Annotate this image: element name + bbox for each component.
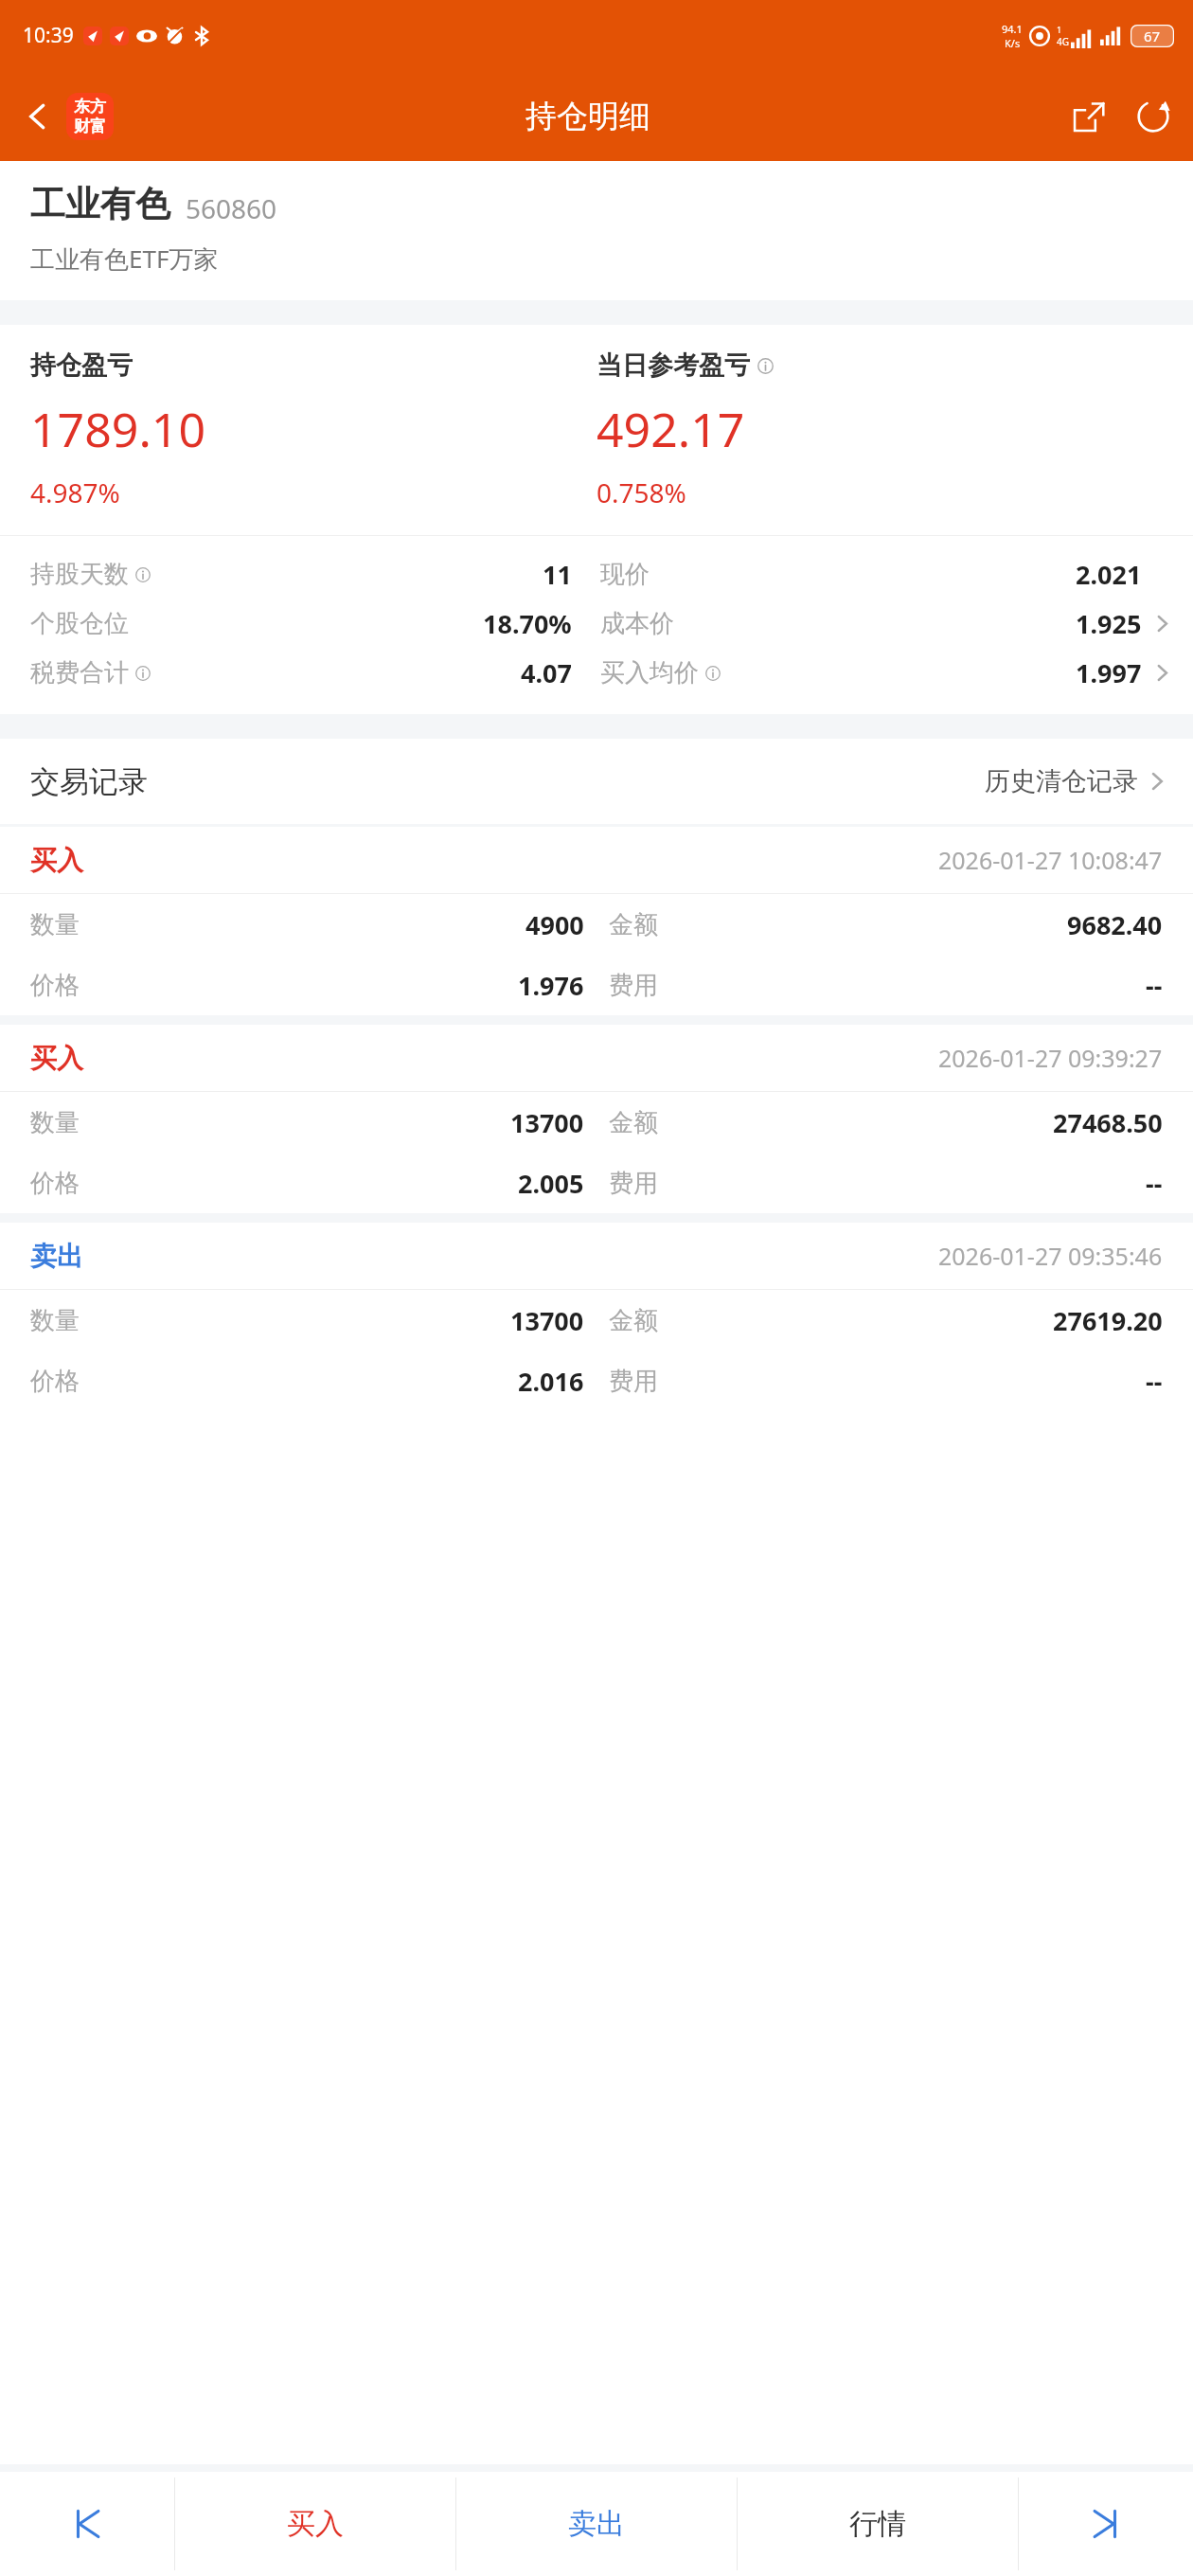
staticText: 费用 [609, 1168, 658, 1199]
staticText: 价格 [30, 1366, 80, 1397]
button[interactable]: 买入 [175, 2472, 455, 2576]
staticText: 历史清仓记录 [985, 765, 1138, 797]
staticText: 工业有色ETF万家 [30, 241, 219, 276]
button[interactable]: Next [1019, 2472, 1193, 2576]
staticText: 买入 [287, 2506, 344, 2542]
staticText: 买入均价 [600, 657, 699, 689]
staticText: 税费合计 [30, 657, 129, 689]
button[interactable]: Share [1062, 90, 1115, 143]
button[interactable]: Refresh [1127, 90, 1180, 143]
staticText: 18.70% [483, 606, 572, 641]
staticText: 0.758% [596, 474, 686, 510]
staticText: 67 [1144, 27, 1161, 45]
staticText: -- [1146, 1364, 1163, 1399]
staticText: 4900 [525, 907, 584, 942]
staticText: K/s [1005, 36, 1021, 50]
staticText: 1.997 [1076, 655, 1142, 690]
staticText: 费用 [609, 970, 658, 1001]
button[interactable]: 卖出 [456, 2472, 737, 2576]
staticText: 27468.50 [1053, 1105, 1163, 1140]
button[interactable]: 历史清仓记录 [979, 760, 1170, 803]
staticText: 2.005 [518, 1166, 584, 1201]
button[interactable]: 行情 [738, 2472, 1018, 2576]
staticText: 金额 [609, 1305, 658, 1336]
button[interactable]: Back [13, 92, 62, 141]
staticText: 1 [1057, 24, 1062, 35]
staticText: 持仓明细 [525, 97, 650, 136]
staticText: 2026-01-27 09:35:46 [938, 1240, 1163, 1272]
button[interactable]: 买入均价 [600, 655, 1170, 690]
staticText: 492.17 [596, 397, 745, 461]
staticText: 1.925 [1076, 606, 1142, 641]
staticText: 11 [543, 557, 572, 592]
staticText: 价格 [30, 1168, 80, 1199]
staticText: 13700 [510, 1105, 584, 1140]
staticText: 买入 [30, 844, 83, 877]
button[interactable]: 东方财富 [66, 93, 114, 140]
staticText: 2026-01-27 10:08:47 [938, 844, 1163, 876]
staticText: 卖出 [30, 1240, 83, 1273]
staticText: 费用 [609, 1366, 658, 1397]
staticText: 买入 [30, 1042, 83, 1075]
staticText: 2026-01-27 09:39:27 [938, 1042, 1163, 1074]
staticText: -- [1146, 1166, 1163, 1201]
staticText: 现价 [600, 559, 650, 590]
staticText: 1789.10 [30, 397, 205, 461]
staticText: 财富 [74, 116, 106, 136]
staticText: 持股天数 [30, 559, 129, 590]
staticText: 4.07 [521, 655, 572, 690]
staticText: -- [1146, 968, 1163, 1003]
staticText: 560860 [186, 190, 277, 226]
staticText: 价格 [30, 970, 80, 1001]
staticText: 2.016 [518, 1364, 584, 1399]
staticText: 10:39 [23, 22, 74, 49]
staticText: 个股仓位 [30, 608, 129, 639]
staticText: 当日参考盈亏 [596, 349, 750, 382]
staticText: 工业有色 [30, 182, 170, 226]
staticText: 交易记录 [30, 763, 148, 800]
staticText: 13700 [510, 1303, 584, 1338]
button[interactable]: 成本价 [600, 606, 1170, 641]
staticText: 行情 [849, 2506, 906, 2542]
staticText: 4.987% [30, 474, 120, 510]
staticText: 94.1 [1002, 22, 1023, 36]
staticText: 27619.20 [1053, 1303, 1163, 1338]
staticText: 4G [1057, 35, 1069, 48]
staticText: 持仓盈亏 [30, 349, 133, 382]
staticText: 2.021 [1076, 557, 1142, 592]
staticText: 金额 [609, 909, 658, 940]
staticText: 数量 [30, 1107, 80, 1138]
staticText: 1.976 [518, 968, 584, 1003]
staticText: 卖出 [568, 2506, 625, 2542]
button[interactable]: Previous [0, 2472, 174, 2576]
staticText: 数量 [30, 909, 80, 940]
staticText: 东方 [74, 97, 106, 116]
staticText: 成本价 [600, 608, 674, 639]
staticText: 数量 [30, 1305, 80, 1336]
staticText: 9682.40 [1067, 907, 1163, 942]
staticText: 金额 [609, 1107, 658, 1138]
